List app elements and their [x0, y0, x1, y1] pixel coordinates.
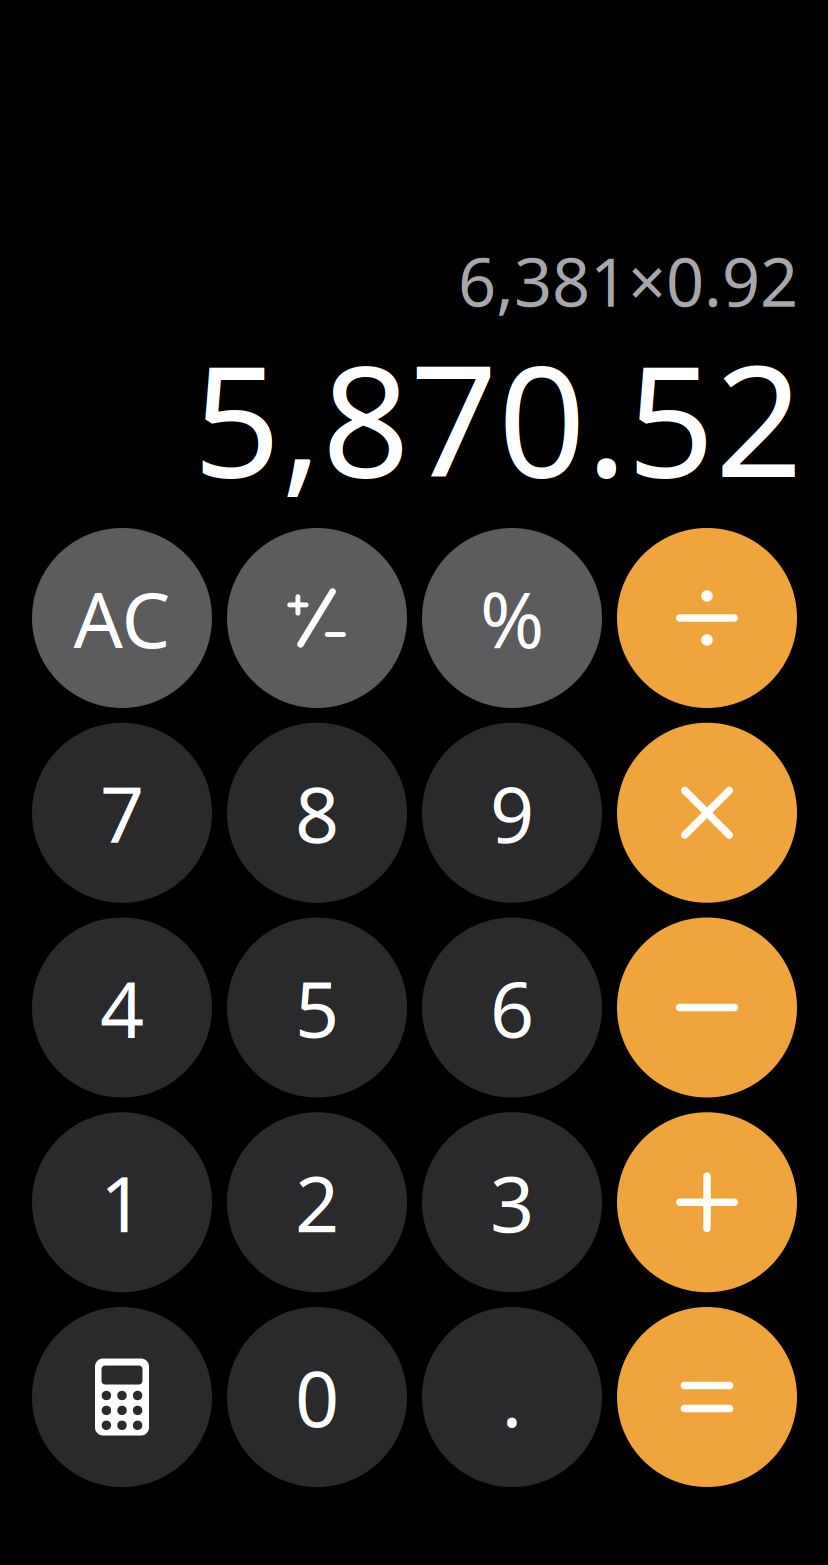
button[interactable]: 2: [227, 1112, 407, 1292]
button[interactable]: 6: [422, 917, 602, 1097]
button[interactable]: Divide: [617, 528, 797, 708]
staticText: %: [480, 567, 544, 669]
button[interactable]: Decimal point: [422, 1307, 602, 1487]
staticText: 0: [295, 1346, 339, 1448]
button[interactable]: 3: [422, 1112, 602, 1292]
staticText: 9: [490, 761, 534, 864]
staticText: 7: [100, 761, 144, 864]
staticText: 4: [100, 956, 144, 1059]
staticText: 8: [295, 761, 339, 864]
staticText: 3: [490, 1151, 534, 1254]
staticText: 6: [490, 956, 534, 1059]
button[interactable]: Calculator: [32, 1307, 212, 1487]
button[interactable]: 9: [422, 723, 602, 903]
button[interactable]: 4: [32, 917, 212, 1097]
button[interactable]: 8: [227, 723, 407, 903]
button[interactable]: Equals: [617, 1307, 797, 1487]
button[interactable]: Add: [617, 1112, 797, 1292]
button[interactable]: 7: [32, 723, 212, 903]
button[interactable]: 5: [227, 917, 407, 1097]
staticText: AC: [73, 567, 170, 669]
staticText: 5: [295, 956, 339, 1059]
button[interactable]: 1: [32, 1112, 212, 1292]
staticText: .: [501, 1346, 522, 1448]
staticText: 5,870.52: [193, 316, 803, 519]
button[interactable]: All Clear: [32, 528, 212, 708]
staticText: 2: [295, 1151, 339, 1254]
staticText: 6,381×0.92: [458, 237, 798, 325]
button[interactable]: Multiply: [617, 723, 797, 903]
button[interactable]: Percent: [422, 528, 602, 708]
button[interactable]: 0: [227, 1307, 407, 1487]
staticText: 1: [100, 1151, 144, 1254]
button[interactable]: Subtract: [617, 917, 797, 1097]
button[interactable]: Toggle sign: [227, 528, 407, 708]
